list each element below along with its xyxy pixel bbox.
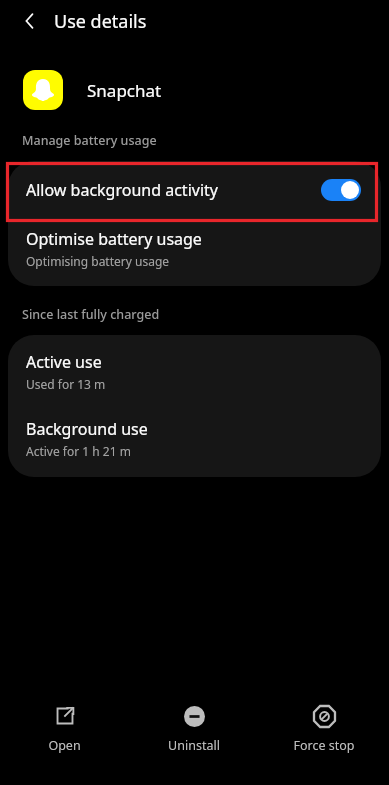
staticText: Optimise battery usage xyxy=(26,228,202,250)
staticText: Use details xyxy=(54,9,147,34)
staticText: Allow background activity xyxy=(26,179,218,201)
button[interactable]: Active use xyxy=(8,335,381,400)
staticText: Active for 1 h 21 m xyxy=(26,443,131,459)
button[interactable]: Allow background activity toggle xyxy=(321,179,361,201)
staticText: Used for 13 m xyxy=(26,376,106,392)
other: Force stop xyxy=(312,704,336,728)
other: Open xyxy=(53,704,77,728)
staticText: Force stop xyxy=(293,737,355,754)
other: Uninstall xyxy=(182,704,206,728)
staticText: Background use xyxy=(26,418,148,440)
staticText: Manage battery usage xyxy=(22,132,157,149)
staticText: Active use xyxy=(26,351,102,373)
button[interactable]: Optimise battery usage xyxy=(8,218,381,286)
staticText: Snapchat xyxy=(87,79,162,102)
staticText: Uninstall xyxy=(168,737,220,754)
staticText: Since last fully charged xyxy=(22,306,160,323)
button[interactable]: Open xyxy=(0,700,129,758)
button[interactable]: Force stop xyxy=(259,700,389,758)
staticText: Open xyxy=(48,737,81,754)
button[interactable]: Back xyxy=(14,5,46,37)
staticText: Optimising battery usage xyxy=(26,253,170,269)
button[interactable]: Uninstall xyxy=(129,700,259,758)
button[interactable]: Snapchat xyxy=(0,66,389,114)
button[interactable]: Allow background activity xyxy=(8,161,381,218)
button[interactable]: Background use xyxy=(8,418,381,477)
